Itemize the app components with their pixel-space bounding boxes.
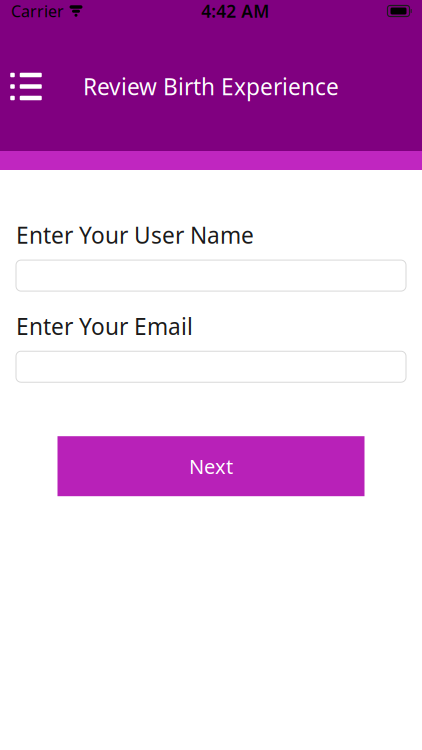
staticText: Carrier [11,0,64,22]
button[interactable]: Next [57,436,364,496]
staticText: Enter Your User Name [16,220,254,250]
staticText: 4:42 AM [201,0,269,22]
button[interactable]: Menu [0,60,52,112]
staticText: Enter Your Email [16,311,193,341]
staticText: Next [189,453,233,479]
staticText: Review Birth Experience [83,71,339,101]
